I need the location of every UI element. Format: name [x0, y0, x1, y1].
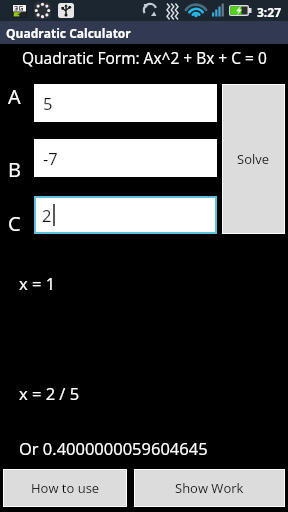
button[interactable]: 5 [34, 84, 217, 122]
staticText: Quadratic Form: Ax^2 + Bx + C = 0 [22, 47, 267, 68]
staticText: 5 [43, 92, 53, 114]
staticText: x = 1 [19, 272, 56, 294]
button[interactable]: 2 [36, 198, 215, 232]
staticText: Or 0.4000000059604645 [19, 437, 208, 459]
staticText: A [8, 83, 21, 107]
staticText: B [8, 156, 21, 180]
staticText: 2 [42, 204, 52, 226]
staticText: C [8, 210, 21, 234]
staticText: How to use [31, 479, 100, 497]
staticText: Solve [237, 150, 270, 168]
button[interactable]: Solve [223, 85, 284, 233]
staticText: Quadratic Calculator [6, 25, 131, 41]
button[interactable]: -7 [34, 139, 217, 177]
button[interactable]: How to use [4, 470, 126, 506]
staticText: 3:27 [257, 4, 282, 20]
staticText: -7 [43, 147, 58, 169]
button[interactable]: Show Work [135, 470, 284, 506]
staticText: Show Work [175, 479, 244, 497]
staticText: x = 2 / 5 [19, 382, 80, 404]
